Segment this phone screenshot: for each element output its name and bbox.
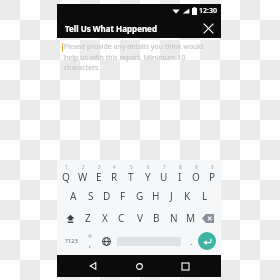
staticText: J [170, 189, 173, 203]
staticText: C [118, 211, 125, 225]
staticText: 3 [98, 164, 101, 170]
staticText: T [128, 170, 134, 184]
staticText: 12:30 [199, 6, 217, 16]
button[interactable]: 8 [172, 163, 187, 185]
button[interactable]: Please provide any details you think wou… [57, 38, 221, 160]
button[interactable]: K [180, 185, 195, 207]
staticText: 8 [179, 164, 182, 170]
button[interactable]: J [164, 185, 179, 207]
staticText: N [170, 211, 178, 225]
button[interactable]: H [148, 185, 163, 207]
button[interactable]: X [97, 207, 112, 229]
button[interactable]: B [149, 207, 164, 229]
button[interactable]: F [115, 185, 130, 207]
button[interactable]: 2 [75, 163, 90, 185]
button[interactable]: ?123 [60, 229, 82, 253]
button[interactable]: 6 [140, 163, 155, 185]
staticText: 6 [147, 164, 150, 170]
button[interactable]: Backspace [200, 207, 216, 229]
button[interactable]: Enter [198, 232, 216, 250]
staticText: 9 [195, 164, 198, 170]
button[interactable]: Back [83, 256, 103, 276]
staticText: X [102, 211, 108, 225]
staticText: 4 [113, 164, 116, 170]
staticText: B [153, 211, 160, 225]
button[interactable]: 0 [205, 163, 220, 185]
button[interactable]: A [66, 185, 81, 207]
staticText: ?123 [65, 237, 78, 245]
button[interactable]: G [132, 185, 147, 207]
button[interactable]: D [99, 185, 114, 207]
staticText: 0 [211, 164, 214, 170]
staticText: Y [145, 170, 151, 184]
staticText: I [178, 170, 182, 184]
button[interactable]: Home [129, 256, 149, 276]
staticText: A [70, 189, 77, 203]
staticText: P [209, 170, 216, 184]
staticText: Please provide any details you think wou… [64, 42, 209, 72]
staticText: 2 [82, 164, 85, 170]
staticText: R [111, 170, 118, 184]
button[interactable]: Recent apps [175, 256, 195, 276]
staticText: D [103, 189, 111, 203]
staticText: . [190, 236, 193, 247]
staticText: 5 [130, 164, 133, 170]
staticText: M [186, 211, 196, 225]
button[interactable]: L [197, 185, 212, 207]
button[interactable]: 9 [188, 163, 203, 185]
staticText: L [202, 189, 208, 203]
button[interactable]: 5 [123, 163, 138, 185]
staticText: G [136, 189, 144, 203]
staticText: V [137, 211, 143, 225]
staticText: K [184, 189, 191, 203]
button[interactable]: Close [200, 20, 216, 36]
button[interactable]: S [83, 185, 98, 207]
button[interactable]: 4 [107, 163, 122, 185]
staticText: Q [62, 170, 70, 184]
button[interactable]: . [184, 229, 198, 253]
staticText: 1 [65, 164, 68, 170]
button[interactable]: 1 [58, 163, 73, 185]
staticText: Tell Us What Happened [65, 23, 157, 34]
staticText: E [96, 170, 102, 184]
staticText: O [192, 170, 200, 184]
button[interactable]: C [114, 207, 129, 229]
staticText: , [89, 238, 92, 249]
button[interactable]: Change language [98, 229, 114, 253]
button[interactable]: Shift [62, 207, 78, 229]
button[interactable]: N [166, 207, 181, 229]
button[interactable]: V [132, 207, 147, 229]
staticText: W [78, 170, 88, 184]
staticText: U [160, 170, 168, 184]
button[interactable]: Comma [82, 229, 98, 253]
button[interactable]: M [183, 207, 198, 229]
button[interactable]: Z [80, 207, 95, 229]
button[interactable]: 7 [156, 163, 171, 185]
staticText: F [120, 189, 126, 203]
staticText: 7 [163, 164, 166, 170]
staticText: Z [85, 211, 91, 225]
staticText: S [88, 189, 94, 203]
staticText: H [152, 189, 160, 203]
button[interactable]: 3 [91, 163, 106, 185]
